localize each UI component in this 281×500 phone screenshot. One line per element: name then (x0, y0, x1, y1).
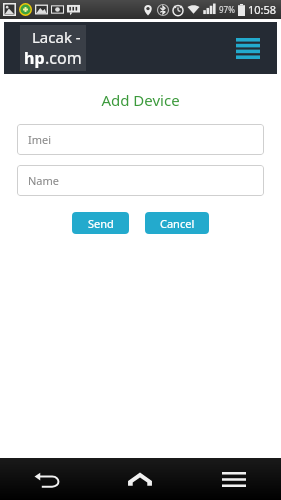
staticText: .com (45, 47, 82, 69)
button[interactable]: Recent apps (187, 458, 281, 500)
staticText: 10:58 (248, 2, 277, 17)
button[interactable]: Lacak - (24, 27, 82, 69)
staticText: Imei (28, 132, 52, 147)
staticText: Name (28, 173, 60, 188)
staticText: 97% (219, 4, 235, 15)
button[interactable]: Name (17, 165, 264, 196)
button[interactable]: Cancel (145, 212, 209, 234)
button[interactable]: Send (72, 212, 129, 234)
button[interactable]: Home (93, 458, 187, 500)
button[interactable]: Imei (17, 124, 264, 155)
button[interactable]: Back (0, 458, 93, 500)
staticText: Lacak - (32, 27, 81, 47)
staticText: Cancel (160, 216, 195, 231)
button[interactable]: Menu (235, 36, 261, 60)
staticText: hp (24, 47, 45, 69)
staticText: Add Device (0, 90, 281, 110)
staticText: Send (88, 216, 114, 231)
